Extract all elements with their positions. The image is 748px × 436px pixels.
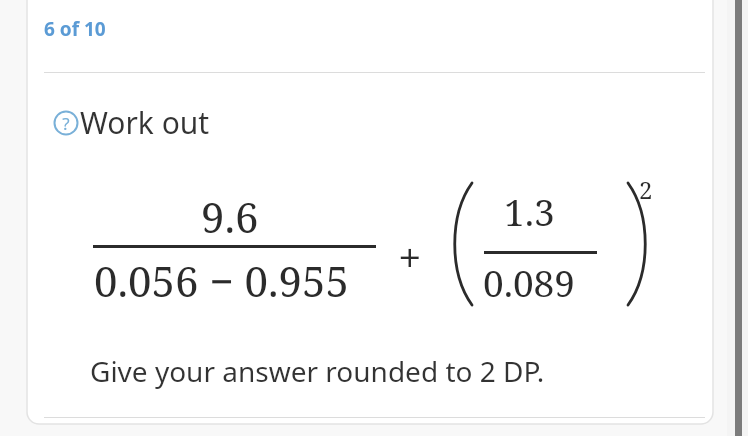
staticText: 0.056 − 0.955 <box>94 252 349 309</box>
staticText: Give your answer rounded to 2 DP. <box>90 352 545 390</box>
staticText: ? <box>62 112 70 135</box>
staticText: 1.3 <box>504 186 555 236</box>
other: Help <box>52 109 80 137</box>
button[interactable]: Help <box>52 102 210 143</box>
staticText: + <box>398 228 422 285</box>
button[interactable]: 6 of 10 <box>44 16 106 42</box>
staticText: 0.089 <box>483 257 575 307</box>
staticText: 2 <box>639 173 653 206</box>
staticText: 6 of 10 <box>44 16 106 42</box>
staticText: Work out <box>80 102 210 143</box>
staticText: 9.6 <box>201 188 259 245</box>
